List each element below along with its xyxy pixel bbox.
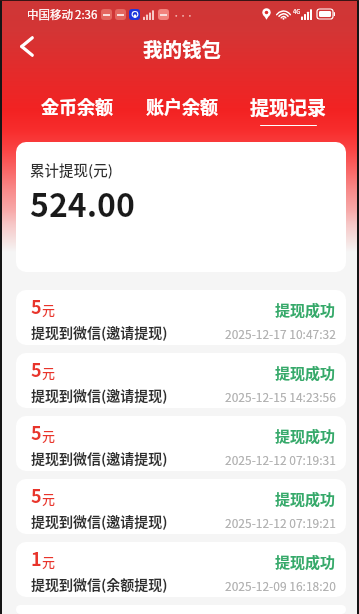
staticText: 中国移动: [27, 6, 73, 23]
button[interactable]: 5: [16, 290, 346, 345]
staticText: 提现成功: [275, 299, 336, 321]
staticText: ···: [173, 6, 194, 23]
button[interactable]: 5: [16, 353, 346, 408]
staticText: 提现成功: [275, 425, 336, 447]
staticText: 提现到微信(邀请提现): [31, 385, 168, 405]
staticText: 元: [42, 489, 56, 508]
staticText: 2:36: [75, 6, 98, 23]
staticText: 2025-12-15 14:23:56: [225, 388, 336, 405]
staticText: 2025-12-12 07:19:21: [225, 514, 336, 531]
staticText: 元: [42, 426, 56, 445]
staticText: 4G: [293, 7, 301, 16]
button[interactable]: 1: [16, 542, 346, 597]
button[interactable]: 提现记录: [245, 93, 332, 126]
staticText: 2025-12-17 10:47:32: [225, 325, 336, 342]
staticText: 提现到微信(邀请提现): [31, 448, 168, 468]
staticText: 元: [42, 552, 56, 571]
staticText: 524.00: [30, 180, 135, 226]
staticText: 提现成功: [275, 488, 336, 510]
staticText: 提现成功: [275, 551, 336, 573]
staticText: 账户余额: [146, 93, 218, 119]
staticText: 提现到微信(邀请提现): [31, 322, 168, 342]
staticText: 提现记录: [250, 93, 327, 121]
button[interactable]: Back: [10, 29, 44, 63]
staticText: 5: [31, 482, 42, 508]
staticText: 5: [31, 419, 42, 445]
button[interactable]: 金币余额: [36, 93, 118, 126]
staticText: 金币余额: [41, 93, 113, 119]
staticText: 提现成功: [275, 362, 336, 384]
button[interactable]: 累计提现(元): [16, 142, 346, 272]
staticText: 累计提现(元): [30, 159, 113, 180]
button[interactable]: 5: [16, 479, 346, 534]
staticText: 提现到微信(邀请提现): [31, 511, 168, 531]
staticText: 我的钱包: [143, 34, 222, 62]
staticText: 2025-12-09 16:18:20: [225, 577, 336, 594]
button[interactable]: 账户余额: [141, 93, 223, 126]
staticText: 5: [31, 356, 42, 382]
staticText: 2025-12-12 07:19:31: [225, 451, 336, 468]
staticText: 5: [31, 293, 42, 319]
staticText: 元: [42, 300, 56, 319]
staticText: 提现到微信(余额提现): [31, 574, 168, 594]
button[interactable]: 5: [16, 416, 346, 471]
staticText: 1: [31, 545, 42, 571]
staticText: 元: [42, 363, 56, 382]
